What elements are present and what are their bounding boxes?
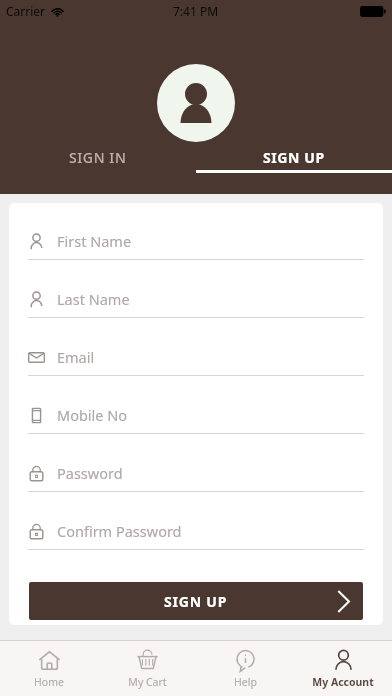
staticText: Carrier	[6, 3, 46, 19]
button[interactable]: Help	[196, 641, 294, 696]
staticText: SIGN UP	[263, 148, 325, 167]
staticText: My Cart	[128, 675, 167, 689]
staticText: SIGN UP	[164, 592, 228, 611]
button[interactable]: SIGN IN	[0, 148, 196, 173]
button[interactable]: Home	[0, 641, 98, 696]
button[interactable]: SIGN UP	[196, 148, 392, 173]
staticText: Password	[57, 463, 123, 483]
staticText: 7:41 PM	[173, 3, 219, 19]
staticText: Mobile No	[57, 405, 128, 425]
staticText: SIGN IN	[69, 148, 127, 167]
staticText: First Name	[57, 231, 132, 251]
staticText: Help	[234, 675, 257, 689]
button[interactable]: First Name	[19, 223, 373, 281]
button[interactable]: Confirm Password	[19, 513, 373, 571]
staticText: Last Name	[57, 289, 130, 309]
staticText: My Account	[312, 675, 374, 689]
staticText: Confirm Password	[57, 521, 182, 541]
button[interactable]: Email	[19, 339, 373, 397]
button[interactable]: My Cart	[98, 641, 196, 696]
button[interactable]: Mobile No	[19, 397, 373, 455]
button[interactable]: Password	[19, 455, 373, 513]
button[interactable]: Last Name	[19, 281, 373, 339]
button[interactable]: SIGN UP	[29, 582, 363, 620]
staticText: Home	[34, 675, 64, 689]
staticText: Email	[57, 347, 95, 367]
button[interactable]: My Account	[294, 641, 392, 696]
